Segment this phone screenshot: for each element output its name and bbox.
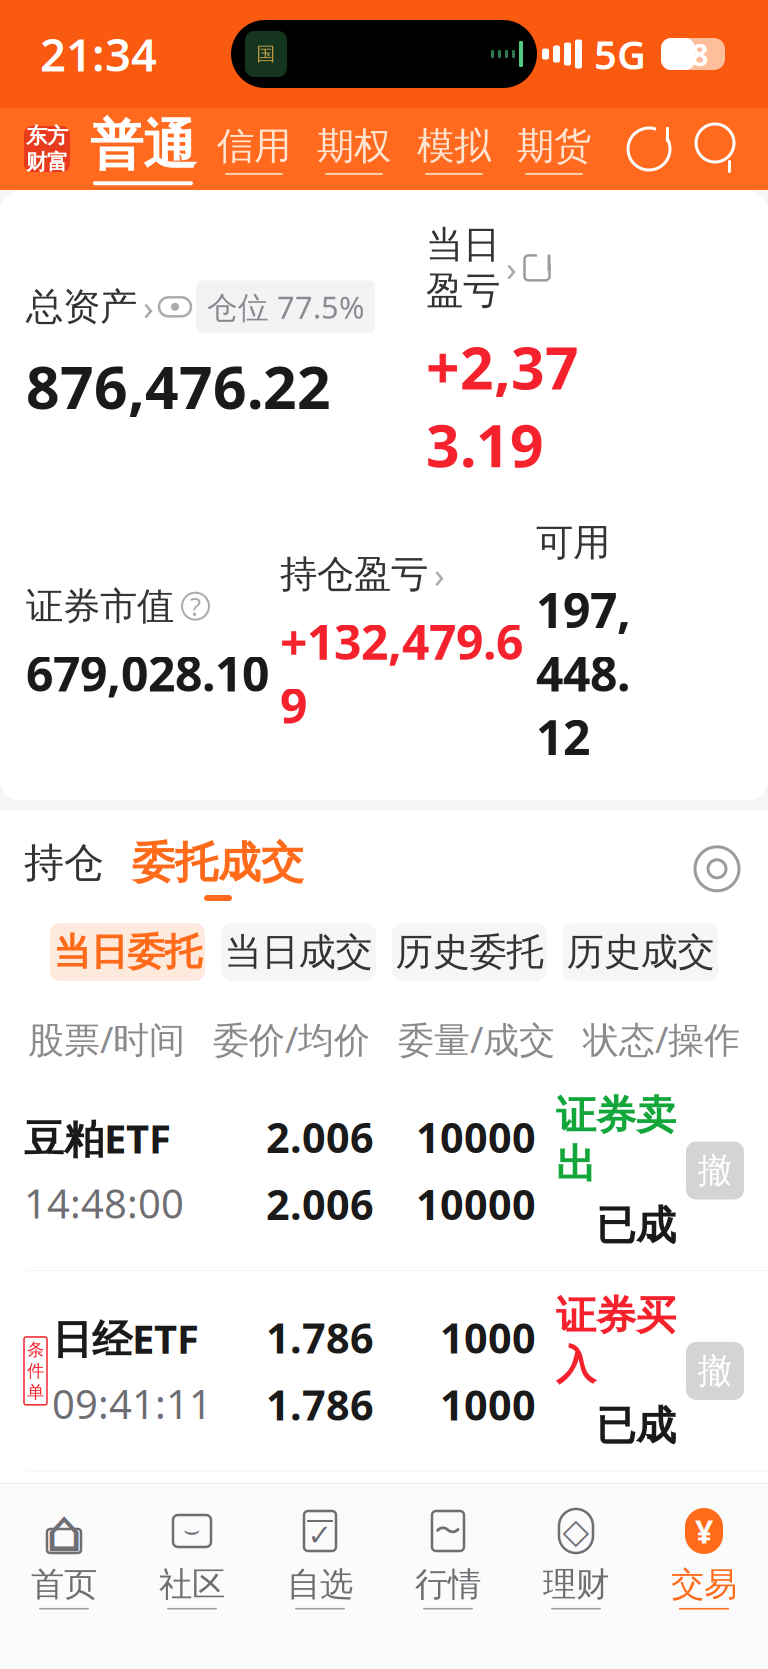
button[interactable]: 模拟	[404, 123, 504, 175]
staticText: 197,448.12	[536, 577, 631, 769]
staticText: 东方	[26, 123, 68, 149]
button[interactable]: 期货	[504, 123, 604, 175]
staticText: 已成	[596, 1401, 676, 1451]
button[interactable]: 历史成交	[563, 923, 718, 981]
staticText: 交易	[671, 1564, 737, 1605]
button[interactable]: 委托成交	[132, 837, 304, 901]
button[interactable]: 当日成交	[221, 923, 376, 981]
button[interactable]: 历史委托	[392, 923, 547, 981]
button[interactable]: 分享	[517, 251, 557, 285]
button[interactable]: ✓	[256, 1500, 384, 1615]
staticText: 条	[27, 1339, 44, 1360]
staticText: 10000	[416, 1110, 536, 1164]
staticText: ⌣	[183, 1518, 201, 1544]
button[interactable]: 当日委托	[50, 923, 205, 981]
staticText: 14:48:00	[24, 1176, 184, 1230]
button[interactable]: 设置	[690, 842, 744, 896]
button[interactable]: 豆粕ETF	[0, 1071, 768, 1270]
staticText: 证券卖出	[556, 1091, 676, 1189]
button[interactable]: 期权	[304, 123, 404, 175]
staticText: ⌂	[45, 1498, 82, 1564]
staticText: +2,373.19	[426, 328, 579, 483]
staticText: 1000	[440, 1377, 536, 1432]
button[interactable]: ¥	[640, 1500, 768, 1615]
staticText: 撤	[697, 1149, 732, 1192]
staticText: 首页	[31, 1564, 97, 1605]
staticText: 信用	[217, 123, 291, 169]
staticText: 状态/操作	[583, 1015, 740, 1063]
staticText: 已成	[596, 1201, 676, 1250]
staticText: 社区	[159, 1564, 225, 1605]
button[interactable]: ⌣	[128, 1500, 256, 1615]
staticText: 当日成交	[224, 929, 372, 975]
staticText: 09:41:11	[52, 1377, 212, 1430]
button[interactable]: 当日盈亏	[426, 222, 517, 314]
button[interactable]: 隐藏金额	[154, 290, 196, 324]
staticText: 1000	[440, 1510, 536, 1565]
button[interactable]: 信用	[204, 123, 304, 175]
button[interactable]: 普通	[70, 113, 204, 185]
staticText: 可用	[536, 519, 610, 565]
button[interactable]: 搜索	[686, 120, 744, 178]
staticText: 2.006	[266, 1176, 374, 1231]
staticText: 〜	[434, 1515, 461, 1547]
button[interactable]: 东方财富	[24, 126, 70, 172]
staticText: 期货	[517, 123, 591, 169]
staticText: 证券买入	[556, 1492, 676, 1590]
staticText: 委价/均价	[213, 1015, 370, 1063]
staticText: ›	[434, 551, 445, 597]
button[interactable]: 仓位 77.5%	[196, 280, 375, 333]
button[interactable]: 持仓盈亏	[280, 551, 536, 597]
staticText: 持仓	[24, 838, 104, 887]
staticText: 1000	[440, 1577, 536, 1632]
button[interactable]: ⌂	[0, 1500, 128, 1615]
button[interactable]: 条	[0, 1271, 768, 1471]
button[interactable]: 刷新	[620, 120, 678, 178]
staticText: 876,476.22	[26, 347, 331, 425]
staticText: 委量/成交	[398, 1015, 555, 1063]
staticText: 10000	[416, 1176, 536, 1231]
staticText: 历史委托	[395, 929, 543, 975]
staticText: 当日盈亏	[426, 222, 500, 314]
staticText: 28	[673, 34, 709, 74]
staticText: 模拟	[417, 123, 491, 169]
staticText: ?	[190, 589, 201, 623]
staticText: 历史成交	[566, 929, 714, 975]
staticText: 持仓盈亏	[280, 551, 428, 597]
staticText: 自选	[287, 1564, 353, 1605]
staticText: ›	[143, 284, 154, 330]
staticText: 撤	[697, 1350, 732, 1392]
button[interactable]: 红利ETF	[0, 1472, 768, 1669]
button[interactable]: 总资产	[26, 284, 154, 330]
staticText: 证券买入	[556, 1291, 676, 1389]
button[interactable]: ◇	[512, 1500, 640, 1615]
staticText: 行情	[415, 1564, 481, 1605]
staticText: 21:34	[40, 24, 157, 84]
staticText: 豆粕ETF	[24, 1111, 171, 1164]
staticText: 日经ETF	[52, 1312, 199, 1365]
staticText: 已成	[596, 1602, 676, 1651]
staticText: 件	[27, 1360, 44, 1382]
staticText: 普通	[90, 113, 196, 178]
staticText: 红利ETF	[24, 1512, 171, 1565]
staticText: 财富	[26, 149, 68, 175]
staticText: 国	[256, 42, 275, 65]
staticText: 股票/时间	[28, 1015, 185, 1063]
staticText: 5G	[594, 27, 646, 80]
button[interactable]: 〜	[384, 1500, 512, 1615]
staticText: 1.786	[266, 1377, 374, 1432]
staticText: 证券市值	[26, 583, 174, 629]
staticText: 仓位 77.5%	[207, 286, 364, 327]
staticText: 理财	[543, 1564, 609, 1605]
staticText: 单	[27, 1382, 44, 1403]
staticText: 2.006	[266, 1110, 374, 1164]
staticText: 期权	[317, 123, 391, 169]
staticText: 当日委托	[53, 929, 201, 975]
staticText: 撤	[697, 1550, 732, 1593]
staticText: ¥	[695, 1510, 713, 1552]
staticText: ✓	[307, 1518, 332, 1552]
staticText: 1000	[440, 1310, 536, 1365]
button[interactable]: 持仓	[24, 838, 132, 899]
staticText: 总资产	[26, 284, 137, 330]
staticText: 679,028.10	[26, 641, 269, 705]
